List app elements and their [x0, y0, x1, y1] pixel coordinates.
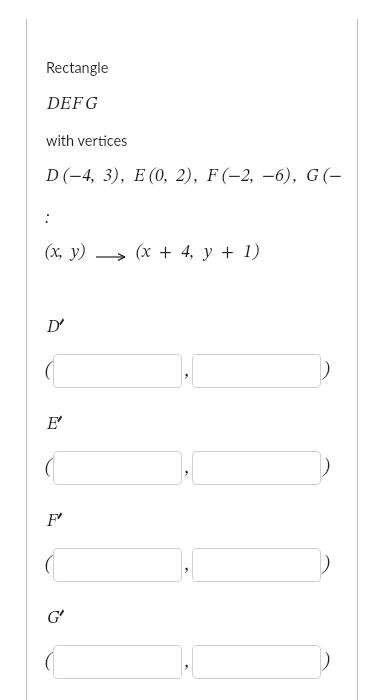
staticText: 1 [243, 243, 252, 261]
staticText: ( [222, 167, 229, 185]
staticText: , [121, 167, 126, 185]
staticText: , [185, 652, 190, 672]
staticText: ) [79, 243, 86, 261]
button[interactable] [192, 451, 321, 485]
staticText: −6 [262, 167, 284, 185]
staticText: D [47, 95, 60, 113]
staticText: ) [253, 243, 260, 261]
staticText: E [134, 167, 146, 185]
staticText: −4 [69, 167, 91, 185]
staticText: ) [284, 167, 291, 185]
button[interactable] [192, 548, 321, 582]
staticText: − [329, 167, 342, 185]
staticText: E [47, 415, 59, 433]
staticText: , [185, 458, 190, 478]
staticText: ( [45, 361, 52, 381]
staticText: , [185, 361, 190, 381]
staticText: + [159, 243, 172, 261]
staticText: , [91, 167, 96, 185]
staticText: ( [136, 243, 143, 261]
staticText: ( [323, 167, 330, 185]
staticText: E [60, 95, 72, 113]
staticText: ( [45, 652, 52, 672]
staticText: 0 [155, 167, 164, 185]
staticText: G [85, 95, 98, 113]
staticText: 3 [103, 167, 112, 185]
staticText: Rectangle [46, 59, 109, 76]
staticText: ( [45, 458, 52, 478]
staticText: ( [63, 167, 70, 185]
staticText: , [194, 167, 199, 185]
staticText: −2 [228, 167, 250, 185]
button[interactable] [192, 354, 321, 388]
button[interactable] [192, 645, 321, 679]
staticText: ) [323, 555, 330, 575]
staticText: G [306, 167, 319, 185]
button[interactable] [53, 645, 182, 679]
staticText: 4 [181, 243, 190, 261]
staticText: ) [185, 167, 192, 185]
staticText: D [47, 318, 60, 336]
staticText: , [293, 167, 298, 185]
staticText: ) [323, 652, 330, 672]
staticText: , [250, 167, 255, 185]
staticText: y [204, 243, 213, 261]
staticText: x [142, 243, 151, 261]
staticText: ) [323, 458, 330, 478]
staticText: D [46, 167, 59, 185]
staticText: ( [149, 167, 156, 185]
staticText: F [47, 512, 58, 530]
staticText: F [207, 167, 218, 185]
staticText: G [47, 609, 60, 627]
button[interactable] [53, 354, 182, 388]
staticText: + [221, 243, 234, 261]
button[interactable] [53, 451, 182, 485]
staticText: 2 [176, 167, 185, 185]
button[interactable] [53, 548, 182, 582]
staticText: , [190, 243, 195, 261]
staticText: y [71, 243, 80, 261]
staticText: , [59, 243, 64, 261]
staticText: : [45, 209, 50, 227]
staticText: F [72, 95, 83, 113]
staticText: ) [323, 361, 330, 381]
staticText: with vertices [46, 132, 128, 149]
staticText: ) [112, 167, 119, 185]
staticText: ( [45, 243, 52, 261]
staticText: ( [45, 555, 52, 575]
staticText: , [185, 555, 190, 575]
staticText: x [51, 243, 60, 261]
staticText: , [164, 167, 169, 185]
